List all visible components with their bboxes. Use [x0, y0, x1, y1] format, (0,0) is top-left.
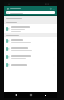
button[interactable]: Row actions — [4, 61, 57, 68]
button[interactable]: Home — [29, 93, 33, 97]
button[interactable]: Back — [14, 93, 18, 97]
button[interactable]: Open navigation menu — [6, 7, 9, 10]
button[interactable]: Row actions — [4, 45, 57, 53]
button[interactable] — [6, 11, 55, 14]
button[interactable]: Search — [49, 7, 52, 10]
button[interactable]: Recent apps — [43, 93, 47, 97]
button[interactable]: Row actions — [4, 37, 57, 45]
button[interactable]: Row actions — [4, 24, 57, 33]
button[interactable]: More options — [52, 7, 55, 10]
button[interactable]: Row actions — [4, 53, 57, 61]
